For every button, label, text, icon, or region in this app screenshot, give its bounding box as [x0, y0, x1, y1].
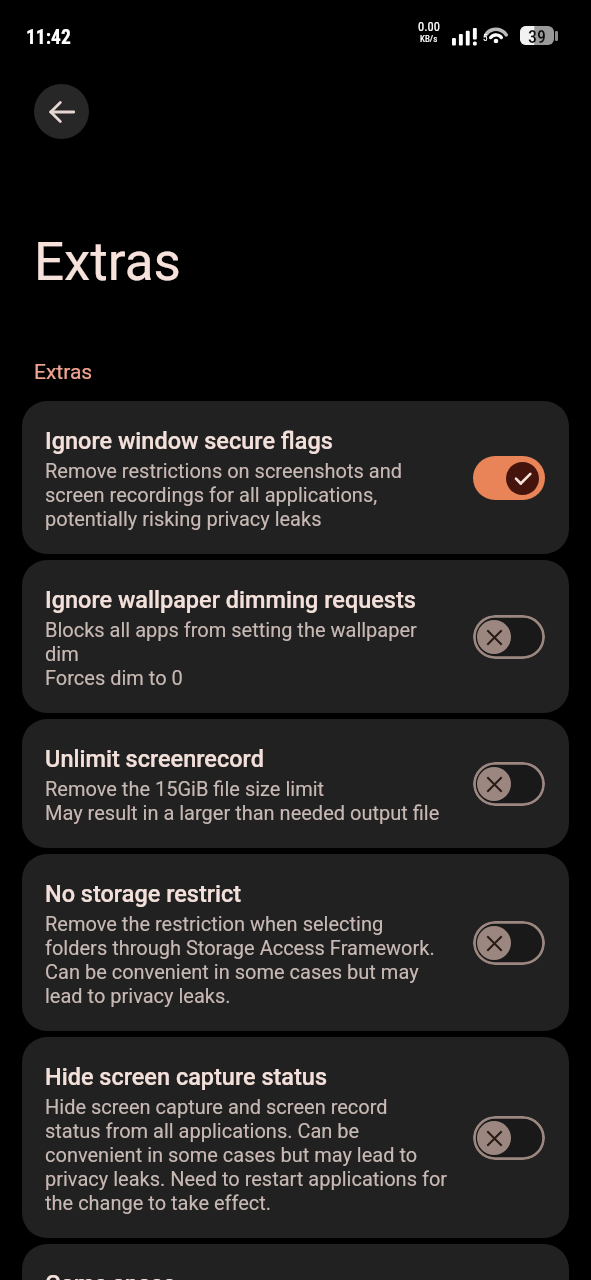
staticText: the change to take effect.: [45, 1191, 272, 1215]
staticText: 39: [528, 26, 546, 45]
staticText: Forces dim to 0: [45, 666, 183, 690]
staticText: Hide screen capture status: [45, 1063, 328, 1091]
button[interactable]: Toggle off: [473, 921, 545, 965]
staticText: Blocks all apps from setting the wallpap…: [45, 618, 417, 642]
button[interactable]: Toggle off: [473, 1116, 545, 1160]
staticText: Remove restrictions on screenshots and: [45, 459, 402, 483]
staticText: folders through Storage Access Framework…: [45, 936, 435, 960]
staticText: May result in a larger than needed outpu…: [45, 801, 440, 825]
staticText: KB/s: [420, 34, 438, 45]
button[interactable]: Hide screen capture status: [22, 1037, 569, 1238]
staticText: Unlimit screenrecord: [45, 745, 264, 773]
button[interactable]: Back: [34, 84, 89, 139]
staticText: Remove the 15GiB file size limit: [45, 777, 325, 801]
staticText: Extras: [34, 360, 93, 385]
staticText: Can be convenient in some cases but may: [45, 960, 419, 984]
button[interactable]: No storage restrict: [22, 854, 569, 1031]
staticText: lead to privacy leaks.: [45, 984, 231, 1008]
button[interactable]: Toggle on: [473, 456, 545, 500]
staticText: 5: [483, 33, 488, 44]
staticText: dim: [45, 642, 79, 666]
staticText: privacy leaks. Need to restart applicati…: [45, 1167, 448, 1191]
button[interactable]: Ignore wallpaper dimming requests: [22, 560, 569, 713]
staticText: No storage restrict: [45, 880, 242, 908]
button[interactable]: Game space: [22, 1244, 569, 1280]
staticText: status from all applications. Can be: [45, 1119, 360, 1143]
button[interactable]: Toggle off: [473, 762, 545, 806]
staticText: potentially risking privacy leaks: [45, 507, 322, 531]
staticText: 0.00: [418, 19, 440, 34]
staticText: Hide screen capture and screen record: [45, 1095, 388, 1119]
button[interactable]: Ignore window secure flags: [22, 401, 569, 554]
staticText: Ignore wallpaper dimming requests: [45, 586, 416, 614]
staticText: Ignore window secure flags: [45, 427, 333, 455]
staticText: Extras: [34, 231, 181, 293]
staticText: Remove the restriction when selecting: [45, 912, 384, 936]
staticText: Game space: [45, 1270, 176, 1280]
staticText: screen recordings for all applications,: [45, 483, 378, 507]
button[interactable]: Toggle off: [473, 615, 545, 659]
staticText: convenient in some cases but may lead to: [45, 1143, 418, 1167]
button[interactable]: Unlimit screenrecord: [22, 719, 569, 848]
staticText: 11:42: [26, 26, 71, 49]
